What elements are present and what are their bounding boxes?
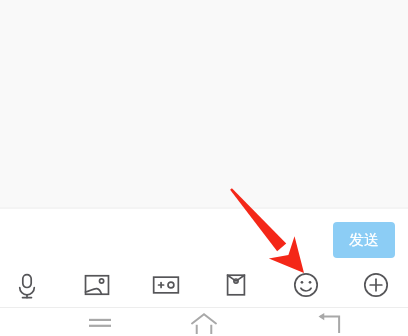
- button[interactable]: Back: [310, 309, 350, 336]
- staticText: 发送: [349, 231, 379, 250]
- button[interactable]: Voice message: [7, 265, 47, 305]
- button[interactable]: Photo: [77, 265, 117, 305]
- button[interactable]: Home: [184, 309, 224, 336]
- button[interactable]: Card: [146, 265, 186, 305]
- button[interactable]: Red packet: [216, 265, 256, 305]
- button[interactable]: Emoji: [286, 265, 326, 305]
- button[interactable]: Recents: [80, 309, 120, 336]
- button[interactable]: 发送: [333, 222, 395, 258]
- button[interactable]: More: [356, 265, 396, 305]
